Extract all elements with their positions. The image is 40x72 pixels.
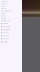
button[interactable]: Library	[0, 7, 22, 10]
button[interactable]: Made for You	[0, 20, 22, 22]
staticText: Browse	[1, 3, 7, 5]
staticText: Recents	[3, 35, 9, 37]
staticText: Favorites	[3, 26, 10, 27]
button[interactable]: Listen Now	[0, 0, 22, 2]
button[interactable]: Recently Added	[0, 10, 22, 12]
button[interactable]: Albums	[0, 15, 22, 17]
button[interactable]: Songs	[0, 17, 22, 20]
button[interactable]: Favorites	[0, 25, 22, 28]
button[interactable]: Browse	[0, 2, 22, 5]
button[interactable]: Settings	[0, 40, 22, 43]
staticText: Downloads	[3, 29, 11, 31]
button[interactable]: Shared	[0, 31, 22, 34]
staticText: Recently Added	[1, 10, 12, 12]
staticText: Albums	[1, 15, 6, 17]
staticText: Listen Now	[1, 0, 8, 2]
staticText: Made for You	[1, 20, 10, 22]
staticText: Settings	[3, 41, 8, 43]
button[interactable]: Genres	[0, 37, 22, 40]
staticText: Playlists	[3, 23, 8, 24]
staticText: Radio	[1, 5, 5, 7]
staticText: Library	[1, 8, 7, 9]
staticText: Shared	[3, 32, 9, 34]
staticText: Artists	[1, 13, 5, 14]
button[interactable]: Radio	[0, 5, 22, 7]
button[interactable]: Downloads	[0, 28, 22, 31]
button[interactable]: Artists	[0, 12, 22, 15]
staticText: Songs	[1, 17, 6, 19]
button[interactable]: Recents	[0, 34, 22, 37]
button[interactable]: Playlists	[0, 22, 22, 25]
staticText: Genres	[3, 38, 9, 40]
